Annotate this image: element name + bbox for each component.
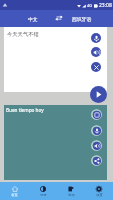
button[interactable]: 记录	[29, 182, 57, 200]
button[interactable]: Full screen	[91, 109, 102, 120]
staticText: 中文	[28, 16, 38, 22]
staticText: 首页	[11, 193, 18, 197]
button[interactable]: Listen	[91, 140, 102, 151]
staticText: 记录	[40, 193, 47, 197]
staticText: 23:08	[99, 2, 112, 9]
button[interactable]: Share	[91, 155, 102, 166]
button[interactable]: 设置	[85, 182, 113, 200]
button[interactable]: 中文	[14, 10, 52, 27]
button[interactable]: Microphone	[91, 33, 101, 43]
button[interactable]: Microphone	[91, 125, 102, 136]
button[interactable]: 首页	[0, 182, 29, 200]
staticText: Buen tiempo hoy	[6, 107, 44, 113]
button[interactable]: 西班牙语	[64, 10, 99, 27]
button[interactable]: 短语	[57, 182, 85, 200]
button[interactable]: Clear text	[91, 62, 101, 72]
staticText: 今天天气不错	[7, 31, 39, 38]
staticText: 短语	[68, 193, 75, 197]
staticText: 设置	[96, 193, 103, 197]
button[interactable]: Listen	[91, 47, 101, 57]
staticText: 西班牙语	[72, 16, 92, 22]
button[interactable]: Translate	[90, 86, 107, 103]
staticText: 4G	[87, 3, 93, 8]
button[interactable]: Swap languages	[51, 10, 66, 27]
